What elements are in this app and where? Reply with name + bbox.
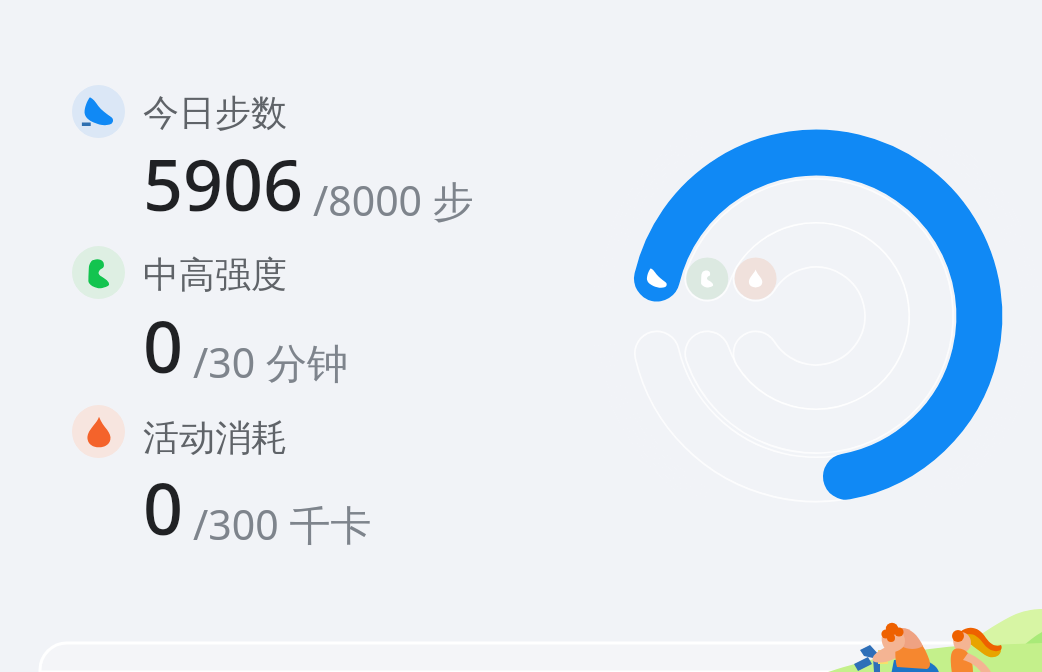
staticText: 5906 (143, 136, 304, 231)
button[interactable]: 中高强度 (143, 252, 287, 297)
button[interactable]: 0 (143, 460, 372, 555)
staticText: 0 (143, 298, 184, 393)
staticText: /30 分钟 (193, 334, 348, 390)
button[interactable]: 活动消耗 (72, 405, 125, 458)
button[interactable]: 5906 (143, 136, 474, 231)
button[interactable]: 0 (143, 298, 348, 393)
staticText: 0 (143, 460, 184, 555)
button[interactable]: 今日步数 (72, 85, 125, 138)
button[interactable]: 今日步数 (143, 90, 287, 135)
button[interactable]: 中高强度 (72, 246, 125, 299)
button[interactable]: 活动消耗 (143, 415, 287, 460)
staticText: /8000 步 (313, 172, 474, 228)
staticText: /300 千卡 (193, 496, 372, 552)
